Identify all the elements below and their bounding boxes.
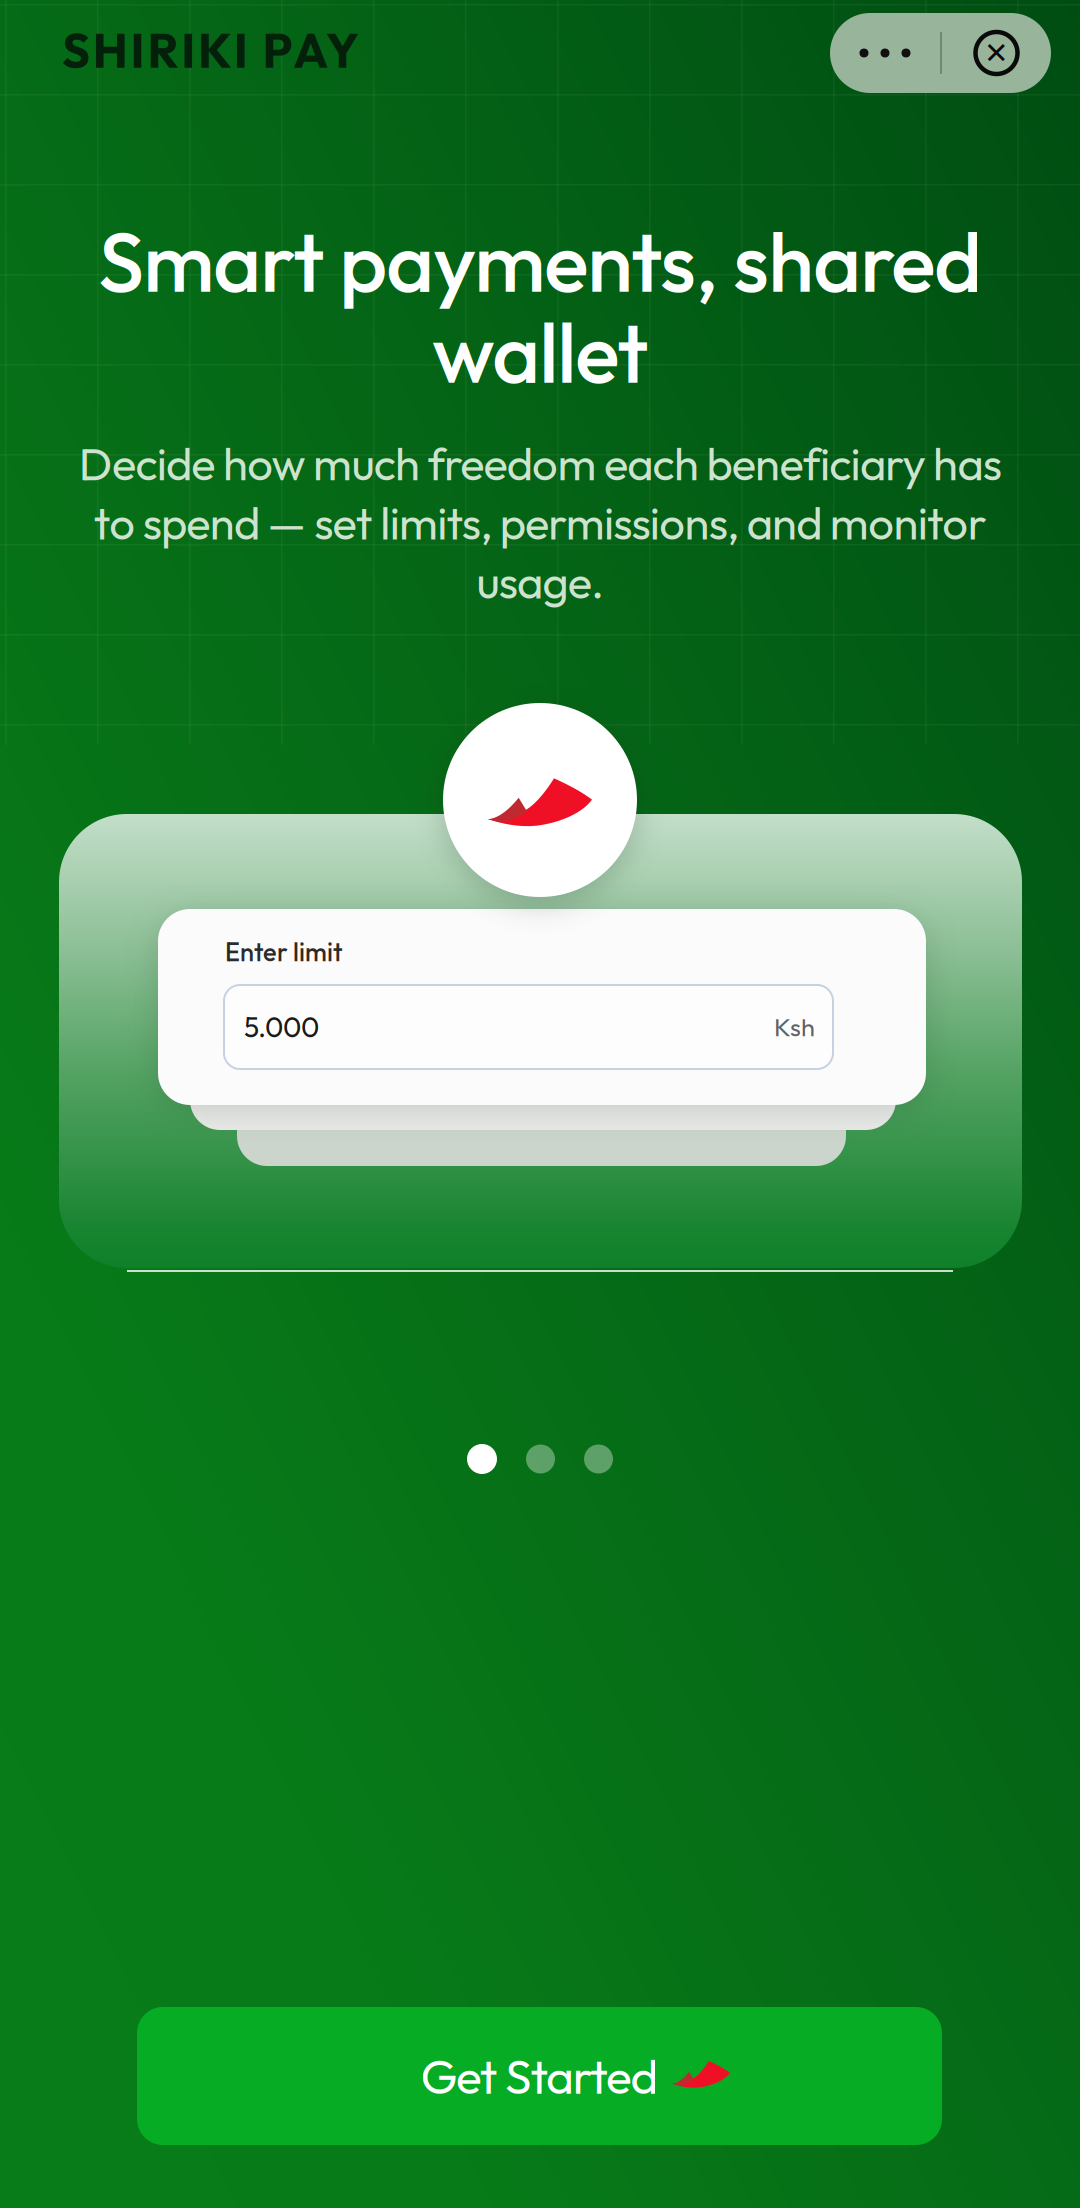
staticText: Get Started (420, 2046, 658, 2106)
staticText: Decide how much freedom each beneficiary… (79, 435, 1001, 610)
button[interactable]: Get Started (137, 2007, 942, 2145)
button[interactable]: More options (830, 10, 1051, 90)
staticText: Ksh (774, 1011, 815, 1043)
staticText: Enter limit (225, 936, 343, 968)
staticText: 5.000 (244, 1009, 319, 1045)
staticText: SHIRIKI PAY (62, 20, 359, 80)
staticText: Smart payments, shared wallet (98, 209, 982, 404)
staticText: ✕ (984, 36, 1009, 70)
